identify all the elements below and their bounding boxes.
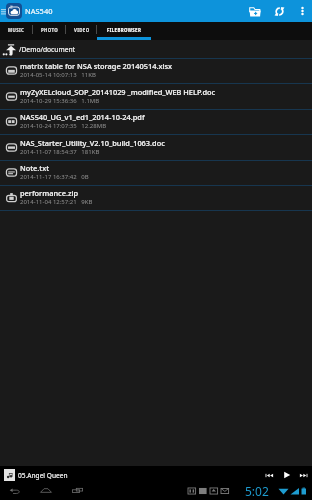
button[interactable]: NAS_Starter_Utility_V2.10_build_1063.doc — [0, 135, 312, 161]
staticText: 2014-11-17 16:37:42 0B — [20, 173, 89, 181]
staticText: VIDEO — [74, 27, 90, 33]
staticText: NAS540_UG_v1_ed1_2014-10-24.pdf — [20, 112, 145, 122]
staticText: 5:02 — [245, 483, 269, 499]
button[interactable]: PHOTO — [33, 22, 66, 37]
button[interactable]: More options — [292, 0, 312, 22]
button[interactable]: performance.zip — [0, 186, 312, 211]
button[interactable]: /Demo/document — [0, 40, 312, 58]
staticText: /Demo/document — [19, 45, 76, 54]
staticText: 05.Angel Queen — [18, 471, 68, 480]
button[interactable]: Open navigation drawer — [0, 0, 6, 22]
button[interactable]: New folder — [243, 0, 267, 22]
staticText: 2014-05-14 10:07:13 11KB — [20, 71, 96, 79]
staticText: myZyXELcloud_SOP_20141029 _modified_WEB … — [20, 87, 216, 97]
button[interactable]: Recent apps — [65, 482, 89, 500]
button[interactable]: FILEBROWSER — [97, 22, 151, 37]
button[interactable]: Play — [278, 466, 295, 482]
staticText: NAS_Starter_Utility_V2.10_build_1063.doc — [20, 138, 165, 148]
staticText: PHOTO — [41, 27, 59, 33]
button[interactable]: Previous track — [261, 466, 278, 482]
button[interactable]: Back — [3, 482, 27, 500]
staticText: 2014-10-29 15:36:36 1.1MB — [20, 97, 100, 105]
staticText: 2014-11-07 18:54:37 181KB — [20, 148, 100, 156]
button[interactable]: NAS540_UG_v1_ed1_2014-10-24.pdf — [0, 110, 312, 135]
button[interactable]: myZyXELcloud_SOP_20141029 _modified_WEB … — [0, 84, 312, 110]
staticText: 2014-11-04 12:57:21 9KB — [20, 198, 93, 206]
button[interactable]: matrix table for NSA storage 20140514.xl… — [0, 59, 312, 84]
staticText: matrix table for NSA storage 20140514.xl… — [20, 61, 173, 71]
staticText: performance.zip — [20, 188, 79, 198]
button[interactable]: MUSIC — [0, 22, 33, 37]
button[interactable]: Home — [34, 482, 58, 500]
staticText: FILEBROWSER — [107, 27, 142, 33]
button[interactable]: Note.txt — [0, 161, 312, 186]
staticText: Note.txt — [20, 163, 50, 173]
staticText: MUSIC — [8, 27, 25, 33]
staticText: NAS540 — [25, 6, 53, 16]
button[interactable]: Refresh — [267, 0, 292, 22]
button[interactable]: VIDEO — [66, 22, 97, 37]
button[interactable]: Next track — [295, 466, 312, 482]
staticText: 2014-10-24 17:07:35 12.28MB — [20, 122, 107, 130]
